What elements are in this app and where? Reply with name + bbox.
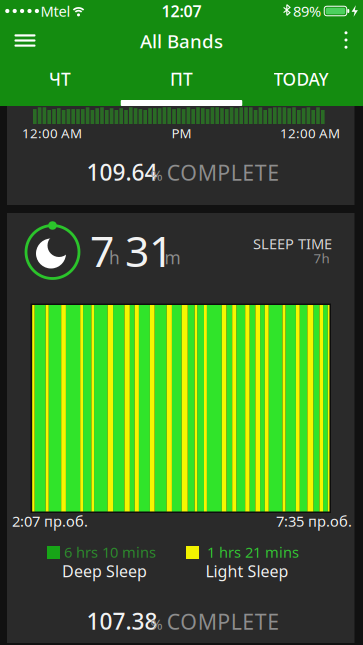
button[interactable]: Menu [8, 25, 42, 55]
staticText: 12:07 [161, 0, 201, 22]
staticText: COMPLETE [167, 158, 279, 187]
staticText: 7:35 пр.об. [276, 511, 352, 531]
staticText: Light Sleep [205, 560, 288, 582]
staticText: 89% [293, 1, 321, 21]
staticText: % [150, 614, 162, 634]
staticText: 109.64 [86, 157, 157, 187]
button[interactable]: More options [333, 25, 359, 55]
staticText: 7 [90, 222, 114, 279]
staticText: 2:07 пр.об. [12, 511, 88, 531]
staticText: 12:00 AM [22, 124, 82, 142]
staticText: All Bands [140, 29, 223, 53]
staticText: Deep Sleep [62, 560, 147, 582]
staticText: COMPLETE [167, 607, 279, 636]
staticText: ПТ [170, 67, 193, 90]
staticText: Mtel [40, 1, 70, 21]
button[interactable]: TODAY [251, 64, 351, 94]
staticText: TODAY [273, 67, 328, 90]
staticText: 12:00 AM [280, 124, 340, 142]
staticText: 1 hrs 21 mins [207, 542, 299, 562]
staticText: 6 hrs 10 mins [64, 542, 156, 562]
staticText: % [150, 165, 162, 185]
staticText: h [109, 246, 120, 269]
staticText: 107.38 [86, 606, 157, 636]
staticText: PM [171, 124, 191, 142]
button[interactable]: ЧТ [10, 64, 110, 94]
button[interactable]: ПТ [131, 64, 231, 94]
staticText: SLEEP TIME [253, 234, 332, 253]
staticText: ЧТ [49, 67, 71, 90]
staticText: 7h [313, 249, 329, 267]
staticText: 31 [125, 222, 173, 279]
staticText: m [164, 246, 180, 269]
